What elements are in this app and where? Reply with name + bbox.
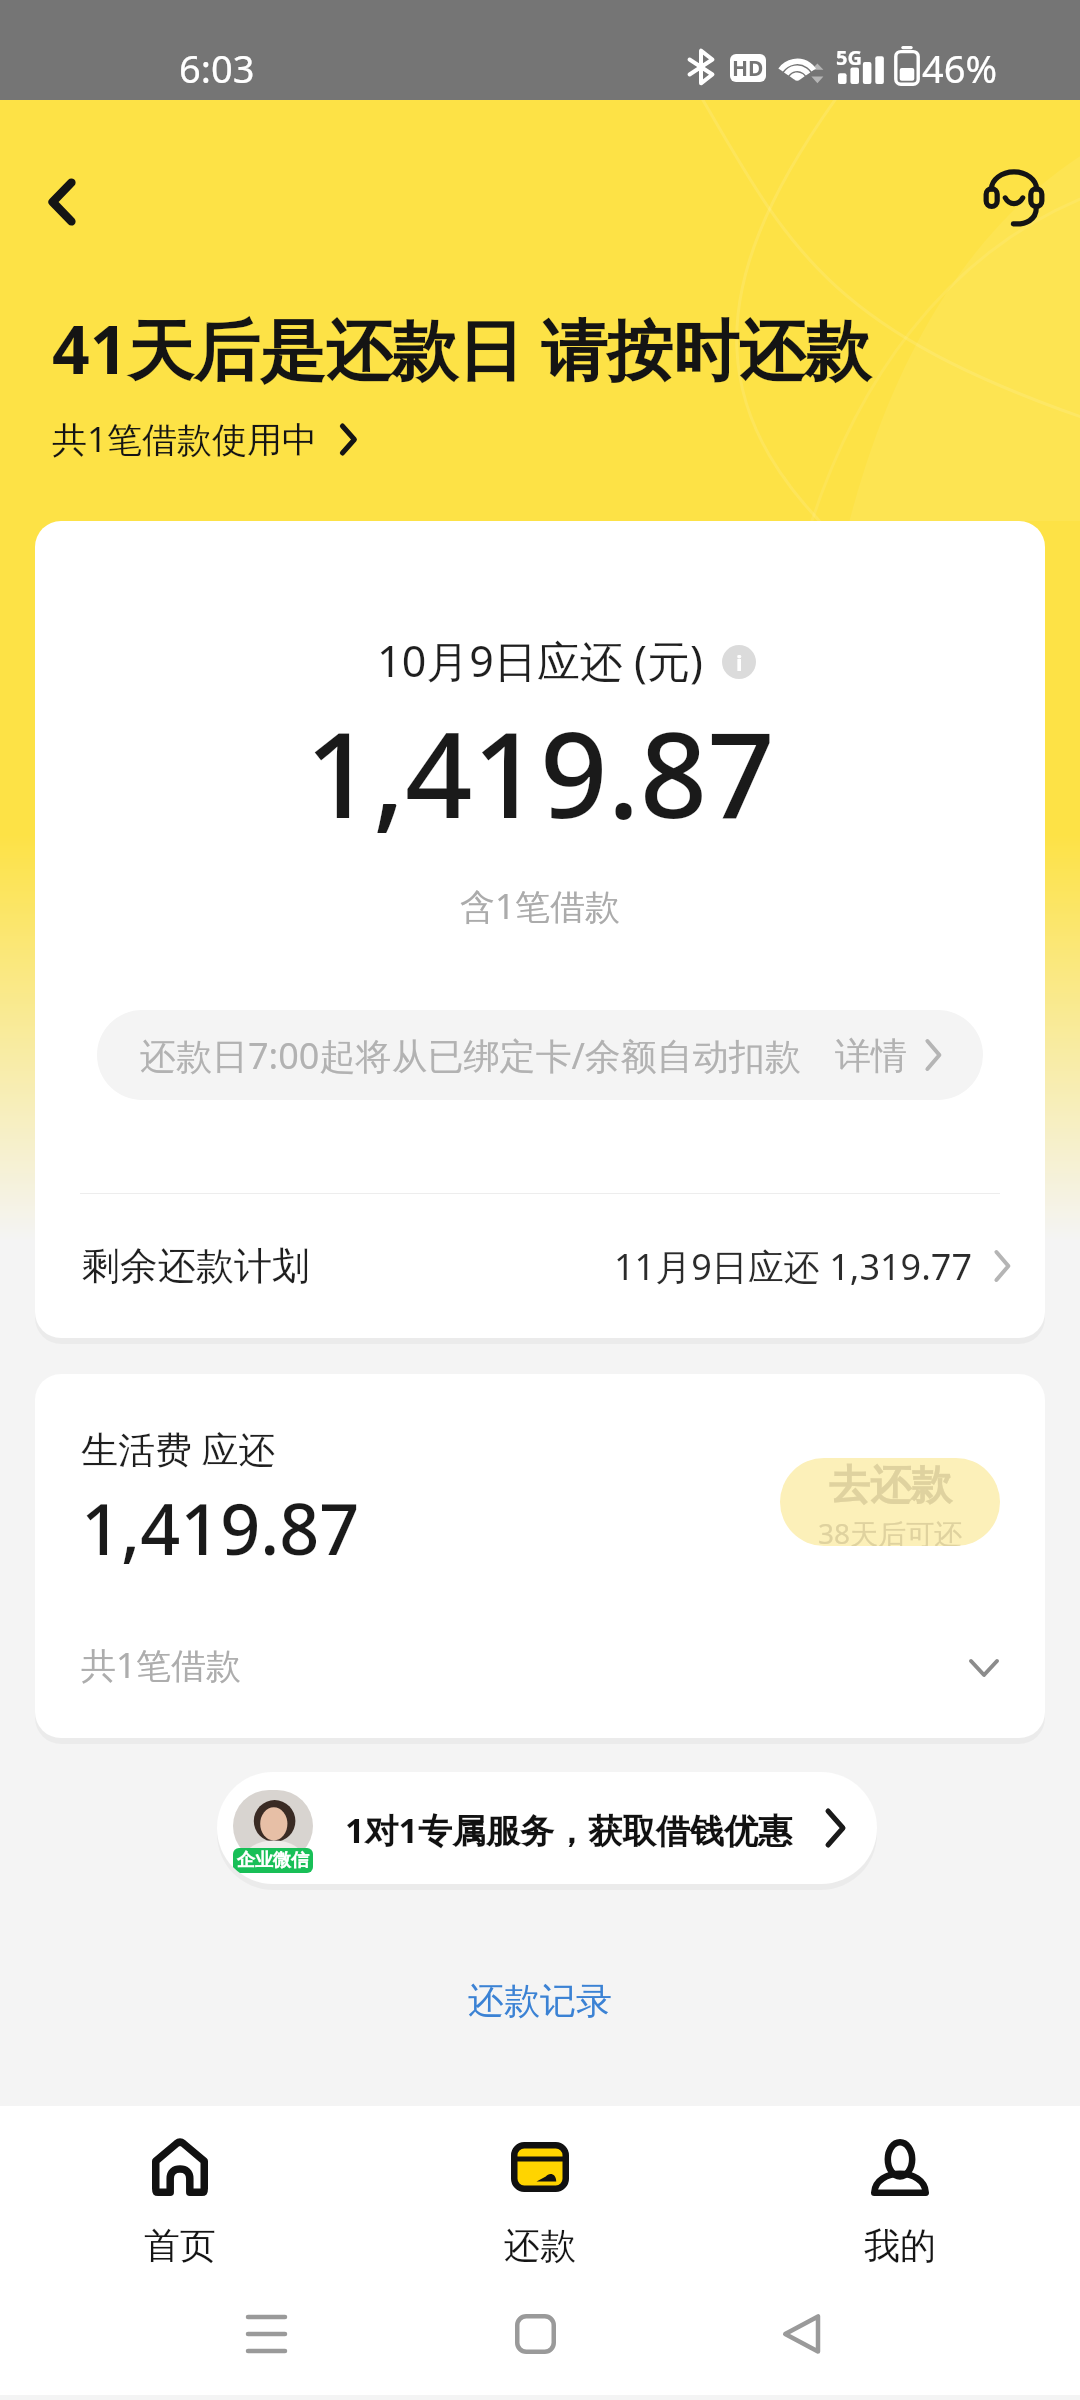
button[interactable]: 共1笔借款使用中: [52, 415, 356, 463]
staticText: 1,419.87: [81, 1480, 360, 1575]
staticText: 1对1专属服务，获取借钱优惠: [345, 1807, 792, 1853]
staticText: 5G: [836, 44, 862, 71]
staticText: 还款: [504, 2223, 576, 2268]
button[interactable]: 还款记录: [0, 1960, 1080, 2040]
staticText: 剩余还款计划: [82, 1242, 310, 1290]
staticText: 41天后是还款日 请按时还款: [52, 303, 871, 393]
button[interactable]: 还款日7:00起将从已绑定卡/余额自动扣款: [97, 1010, 983, 1100]
staticText: 46%: [922, 42, 998, 94]
button[interactable]: 我的: [810, 2135, 990, 2295]
staticText: 38天后可还: [818, 1514, 963, 1546]
staticText: 6:03: [179, 42, 255, 94]
staticText: 1,419.87: [35, 692, 1045, 853]
staticText: i: [736, 647, 743, 677]
staticText: 企业微信: [237, 1849, 309, 1872]
staticText: 还款日7:00起将从已绑定卡/余额自动扣款: [140, 1031, 801, 1080]
button[interactable]: 首页: [90, 2135, 270, 2295]
button[interactable]: 剩余还款计划: [35, 1194, 1045, 1338]
button[interactable]: 去还款: [780, 1458, 1000, 1546]
staticText: 10月9日应还 (元): [35, 631, 1045, 690]
staticText: 共1笔借款: [81, 1641, 242, 1689]
staticText: 11月9日应还 1,319.77: [614, 1242, 972, 1291]
staticText: 详情: [835, 1033, 907, 1078]
staticText: 还款记录: [468, 1978, 612, 2023]
staticText: 共1笔借款使用中: [52, 415, 318, 463]
button[interactable]: Info: [722, 645, 756, 679]
button[interactable]: Back: [18, 158, 106, 246]
staticText: HD: [732, 54, 764, 82]
button[interactable]: Back: [754, 2286, 850, 2382]
button[interactable]: Home: [487, 2286, 583, 2382]
staticText: 我的: [864, 2223, 936, 2268]
staticText: 去还款: [829, 1460, 952, 1512]
staticText: 生活费 应还: [81, 1423, 276, 1474]
staticText: 含1笔借款: [35, 882, 1045, 930]
button[interactable]: Customer service: [964, 145, 1064, 245]
button[interactable]: 企业微信: [217, 1772, 877, 1884]
staticText: 首页: [144, 2223, 216, 2268]
button[interactable]: 还款: [450, 2135, 630, 2295]
button[interactable]: 共1笔借款: [35, 1630, 1045, 1700]
button[interactable]: Recents: [218, 2286, 314, 2382]
